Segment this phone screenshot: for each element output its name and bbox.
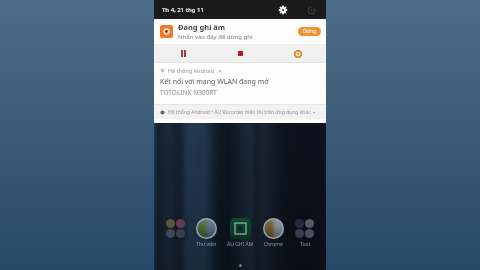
other: Folder <box>165 218 186 239</box>
button[interactable]: Record <box>269 45 326 62</box>
staticText: ÂU GHI ÂM <box>227 241 254 248</box>
button[interactable]: Chrome <box>263 218 284 249</box>
button[interactable]: Đang ghi âm <box>154 19 326 62</box>
staticText: Dừng <box>303 28 317 35</box>
button[interactable]: Tuoi <box>294 218 315 249</box>
button[interactable]: ÂU GHI ÂM <box>227 218 254 249</box>
button[interactable]: Dừng <box>298 27 321 36</box>
other: Chrome <box>263 218 284 239</box>
button[interactable]: Hệ thống Android <box>154 63 326 97</box>
staticText: Nhấn vào đây để dừng ghi <box>178 33 253 41</box>
button[interactable]: Hệ thống Android • ÂU Recorder hiển thị … <box>154 105 326 119</box>
other: Thư viện <box>196 218 217 239</box>
button[interactable]: Pause <box>154 45 212 62</box>
staticText: ▾ <box>313 110 316 115</box>
button[interactable]: Stop <box>212 45 269 62</box>
staticText: Chrome <box>264 241 283 248</box>
button[interactable]: Folder <box>165 218 186 249</box>
staticText: TOTOLINK N300RT <box>160 88 217 97</box>
staticText: Th 4, 21 thg 11 <box>162 6 204 14</box>
staticText: Hệ thống Android <box>168 67 215 74</box>
staticText: Kết nối với mạng WLAN đang mở <box>160 77 269 87</box>
button[interactable]: Collapse <box>304 3 318 17</box>
staticText: Đang ghi âm <box>178 22 226 32</box>
button[interactable]: Thư viện <box>196 218 217 249</box>
staticText: Hệ thống Android • ÂU Recorder hiển thị … <box>168 109 311 116</box>
button[interactable]: Settings <box>276 3 290 17</box>
staticText: Tuoi <box>300 241 310 248</box>
other: ÂU GHI ÂM <box>230 218 251 239</box>
other: Tuoi <box>294 218 315 239</box>
staticText: Thư viện <box>196 241 217 248</box>
